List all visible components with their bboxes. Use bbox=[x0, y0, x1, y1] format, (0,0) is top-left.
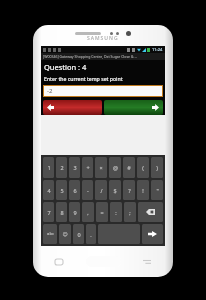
staticText: 1 bbox=[47, 164, 51, 171]
button[interactable]: 5 bbox=[56, 180, 67, 200]
staticText: ☺ bbox=[62, 231, 68, 237]
button[interactable]: ( bbox=[137, 157, 149, 178]
staticText: : bbox=[115, 209, 117, 216]
button[interactable]: Previous question bbox=[43, 100, 102, 115]
staticText: SAMSUNG bbox=[87, 35, 119, 42]
button[interactable]: 7 bbox=[43, 202, 54, 222]
staticText: ? bbox=[128, 187, 131, 194]
staticText: , bbox=[87, 209, 89, 216]
staticText: 9 bbox=[73, 209, 77, 216]
button[interactable]: + bbox=[82, 157, 93, 178]
button[interactable]: / bbox=[95, 180, 107, 200]
button[interactable]: - bbox=[82, 180, 93, 200]
button[interactable]: 6 bbox=[69, 180, 80, 200]
staticText: ) bbox=[156, 164, 158, 171]
button[interactable]: × bbox=[95, 157, 107, 178]
staticText: ; bbox=[129, 209, 131, 216]
button[interactable]: 9 bbox=[69, 202, 80, 222]
staticText: 4 bbox=[47, 187, 51, 194]
button[interactable]: Back bbox=[142, 257, 152, 267]
button[interactable]: ? bbox=[123, 180, 135, 200]
staticText: Question : 4 bbox=[44, 62, 87, 72]
staticText: " bbox=[156, 187, 159, 194]
staticText: . bbox=[90, 231, 92, 238]
button[interactable]: Menu bbox=[54, 257, 64, 267]
staticText: 7 bbox=[47, 209, 51, 216]
button[interactable]: -2 bbox=[44, 86, 162, 96]
button[interactable]: , bbox=[82, 202, 94, 222]
button[interactable]: Next question bbox=[104, 100, 163, 115]
button[interactable]: ! bbox=[137, 180, 149, 200]
button[interactable]: 0 bbox=[73, 224, 84, 244]
button[interactable]: abc bbox=[43, 224, 57, 244]
button[interactable]: @ bbox=[109, 157, 121, 178]
staticText: $ bbox=[113, 187, 117, 194]
button[interactable]: ; bbox=[124, 202, 136, 222]
button[interactable]: ) bbox=[151, 157, 163, 178]
button[interactable]: 3 bbox=[69, 157, 80, 178]
staticText: # bbox=[127, 164, 131, 171]
staticText: = bbox=[100, 209, 104, 216]
staticText: ! bbox=[142, 187, 144, 194]
staticText: × bbox=[99, 164, 103, 171]
button[interactable]: = bbox=[96, 202, 108, 222]
button[interactable]: . bbox=[86, 224, 96, 244]
staticText: @ bbox=[113, 164, 118, 171]
staticText: abc bbox=[47, 231, 54, 237]
staticText: 6 bbox=[73, 187, 77, 194]
button[interactable]: 4 bbox=[43, 180, 54, 200]
staticText: + bbox=[86, 164, 90, 171]
staticText: [W00346] Gateway Shopping Centre, Dxt Su… bbox=[43, 54, 138, 59]
button[interactable]: 8 bbox=[56, 202, 67, 222]
button[interactable]: [W00346] Gateway Shopping Centre, Dxt Su… bbox=[41, 53, 165, 60]
button[interactable]: " bbox=[151, 180, 163, 200]
staticText: - bbox=[87, 187, 89, 194]
staticText: 3 bbox=[73, 164, 77, 171]
staticText: 5 bbox=[60, 187, 64, 194]
staticText: 8 bbox=[60, 209, 64, 216]
button[interactable]: : bbox=[110, 202, 122, 222]
button[interactable]: ☺ bbox=[59, 224, 71, 244]
button[interactable]: Backspace bbox=[138, 202, 163, 222]
staticText: -2 bbox=[47, 87, 53, 95]
button[interactable]: 1 bbox=[43, 157, 54, 178]
staticText: Enter the current temp set point bbox=[44, 75, 123, 82]
staticText: ( bbox=[142, 164, 144, 171]
staticText: 11:24 bbox=[152, 47, 163, 52]
button[interactable]: Enter bbox=[142, 224, 163, 244]
button[interactable]: 2 bbox=[56, 157, 67, 178]
button[interactable]: # bbox=[123, 157, 135, 178]
staticText: / bbox=[100, 187, 103, 194]
button[interactable]: $ bbox=[109, 180, 121, 200]
staticText: 2 bbox=[60, 164, 64, 171]
staticText: 0 bbox=[77, 231, 81, 238]
